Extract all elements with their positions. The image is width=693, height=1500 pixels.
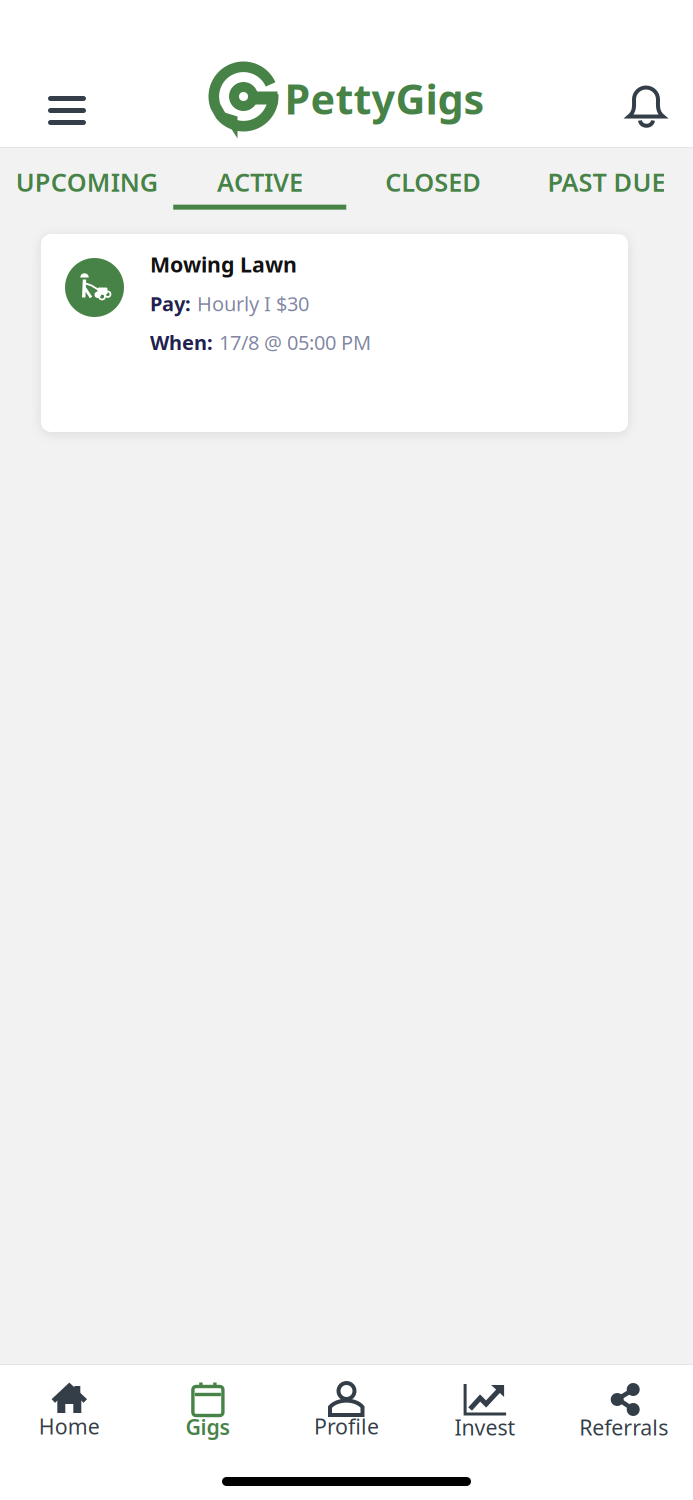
button[interactable]: Mowing Lawn	[41, 234, 628, 432]
staticText: Pay:	[150, 290, 191, 317]
button[interactable]: Gigs	[139, 1382, 277, 1444]
staticText: UPCOMING	[16, 165, 158, 199]
staticText: Mowing Lawn	[150, 250, 297, 278]
button[interactable]: Notifications	[603, 73, 689, 147]
staticText: 17/8 @ 05:00 PM	[219, 329, 371, 355]
staticText: CLOSED	[385, 165, 481, 199]
staticText: Gigs	[185, 1412, 230, 1441]
button[interactable]: CLOSED	[346, 148, 520, 220]
staticText: Invest	[455, 1413, 516, 1441]
button[interactable]: PAST DUE	[520, 148, 693, 220]
staticText: PettyGigs	[284, 71, 484, 126]
staticText: When:	[150, 329, 213, 355]
button[interactable]: Referrals	[554, 1382, 693, 1444]
button[interactable]: UPCOMING	[0, 148, 173, 220]
staticText: ACTIVE	[217, 165, 303, 199]
button[interactable]: Home	[0, 1383, 139, 1443]
staticText: Profile	[314, 1412, 379, 1440]
staticText: Referrals	[579, 1413, 668, 1441]
staticText: Hourly I $30	[197, 290, 309, 317]
button[interactable]: ACTIVE	[173, 148, 346, 220]
staticText: Home	[39, 1412, 100, 1440]
button[interactable]: Profile	[277, 1383, 416, 1443]
button[interactable]: Invest	[416, 1382, 554, 1444]
staticText: PAST DUE	[547, 165, 665, 199]
button[interactable]: Menu	[4, 73, 90, 147]
